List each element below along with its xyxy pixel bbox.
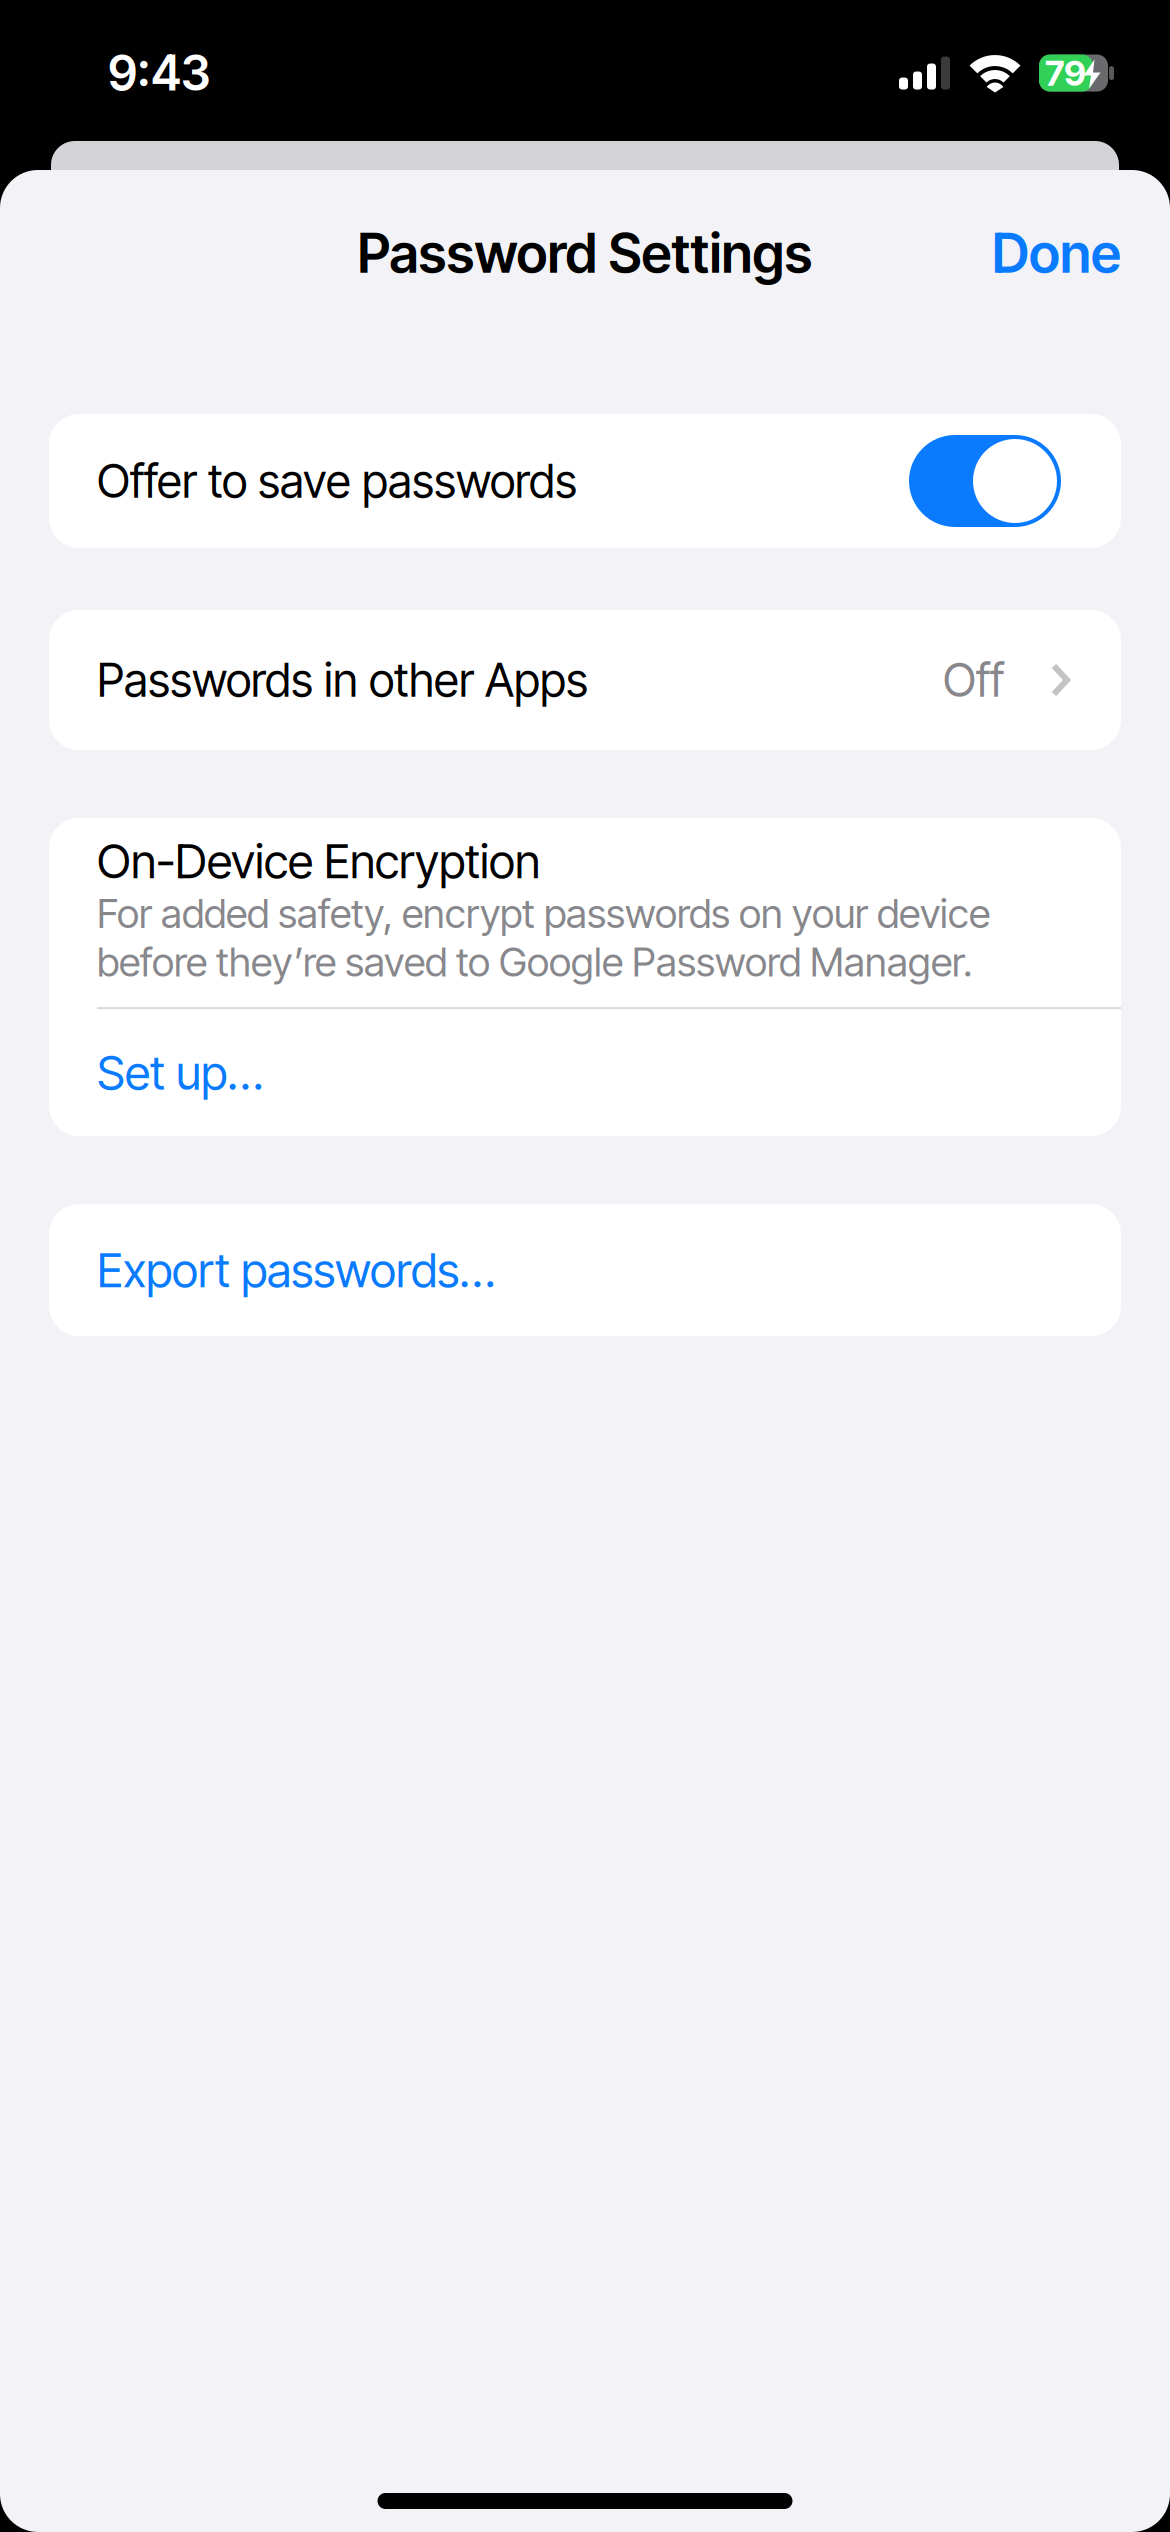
staticText: Password Settings: [357, 220, 812, 286]
staticText: Offer to save passwords: [97, 453, 577, 509]
button[interactable]: Export passwords…: [49, 1204, 1121, 1336]
button[interactable]: Done: [992, 220, 1121, 286]
button[interactable]: Passwords in other Apps: [49, 610, 1121, 750]
button[interactable]: Offer to save passwords: [909, 435, 1061, 527]
button[interactable]: Set up…: [49, 1009, 1121, 1136]
staticText: Done: [992, 220, 1121, 286]
staticText: For added safety, encrypt passwords on y…: [97, 889, 990, 986]
staticText: Set up…: [97, 1044, 263, 1101]
staticText: 79: [1045, 52, 1086, 94]
staticText: 9:43: [108, 44, 210, 102]
staticText: Off: [943, 652, 1004, 708]
staticText: On-Device Encryption: [97, 837, 540, 885]
staticText: Passwords in other Apps: [97, 652, 588, 708]
staticText: Export passwords…: [97, 1242, 495, 1299]
